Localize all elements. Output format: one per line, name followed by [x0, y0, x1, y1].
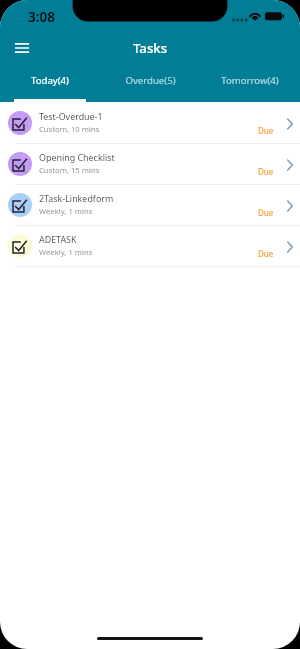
staticText: ADETASK — [39, 233, 77, 245]
button[interactable]: Today(4) — [0, 70, 100, 90]
staticText: Weekly, 1 mins — [39, 206, 93, 216]
staticText: Opening Checklist — [39, 151, 115, 163]
button[interactable]: Opening Checklist — [0, 144, 300, 185]
staticText: Overdue(5) — [125, 74, 176, 87]
button[interactable]: 2Task-Linkedform — [0, 185, 300, 226]
staticText: Custom, 15 mins — [39, 165, 100, 175]
button[interactable]: Overdue(5) — [100, 70, 200, 90]
button[interactable]: Tomorrow(4) — [200, 70, 300, 90]
staticText: Tasks — [133, 39, 168, 57]
staticText: Test-Overdue-1 — [39, 110, 103, 122]
staticText: Due — [258, 248, 274, 259]
button[interactable]: Test-Overdue-1 — [0, 103, 300, 144]
staticText: Tomorrow(4) — [221, 74, 279, 87]
staticText: Due — [258, 166, 274, 177]
button[interactable]: ADETASK — [0, 226, 300, 267]
staticText: 3:08 — [28, 8, 55, 26]
staticText: Due — [258, 125, 274, 136]
button[interactable]: Menu — [8, 35, 35, 61]
staticText: Custom, 10 mins — [39, 124, 100, 134]
staticText: 2Task-Linkedform — [39, 192, 114, 204]
staticText: Due — [258, 207, 274, 218]
staticText: Weekly, 1 mins — [39, 247, 93, 257]
staticText: Today(4) — [31, 74, 69, 87]
